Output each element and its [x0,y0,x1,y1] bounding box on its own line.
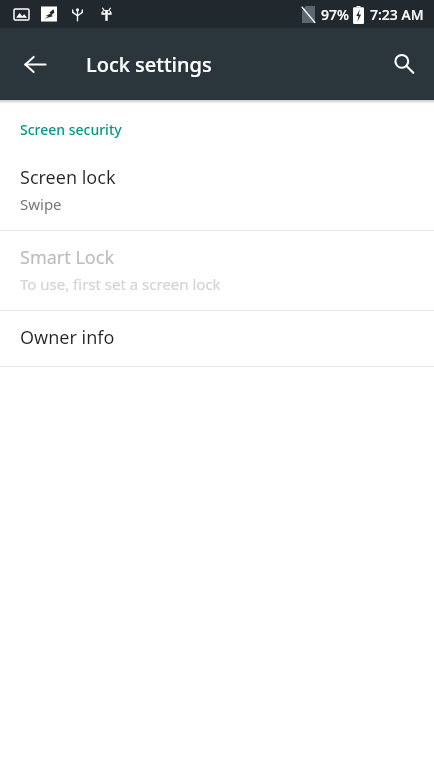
button[interactable]: Screen lock [0,151,434,230]
button[interactable]: Navigate up [11,40,59,88]
staticText: 97% [321,5,349,24]
button[interactable]: Smart Lock [0,231,434,310]
button[interactable]: Owner info [0,311,434,366]
staticText: Screen lock [20,165,116,190]
staticText: Smart Lock [20,245,114,270]
staticText: Swipe [20,194,62,214]
staticText: Owner info [20,325,115,350]
staticText: Lock settings [86,51,212,78]
staticText: 7:23 AM [370,5,424,24]
button[interactable]: Search [380,40,428,88]
staticText: To use, first set a screen lock [20,274,221,294]
staticText: Screen security [20,120,122,139]
